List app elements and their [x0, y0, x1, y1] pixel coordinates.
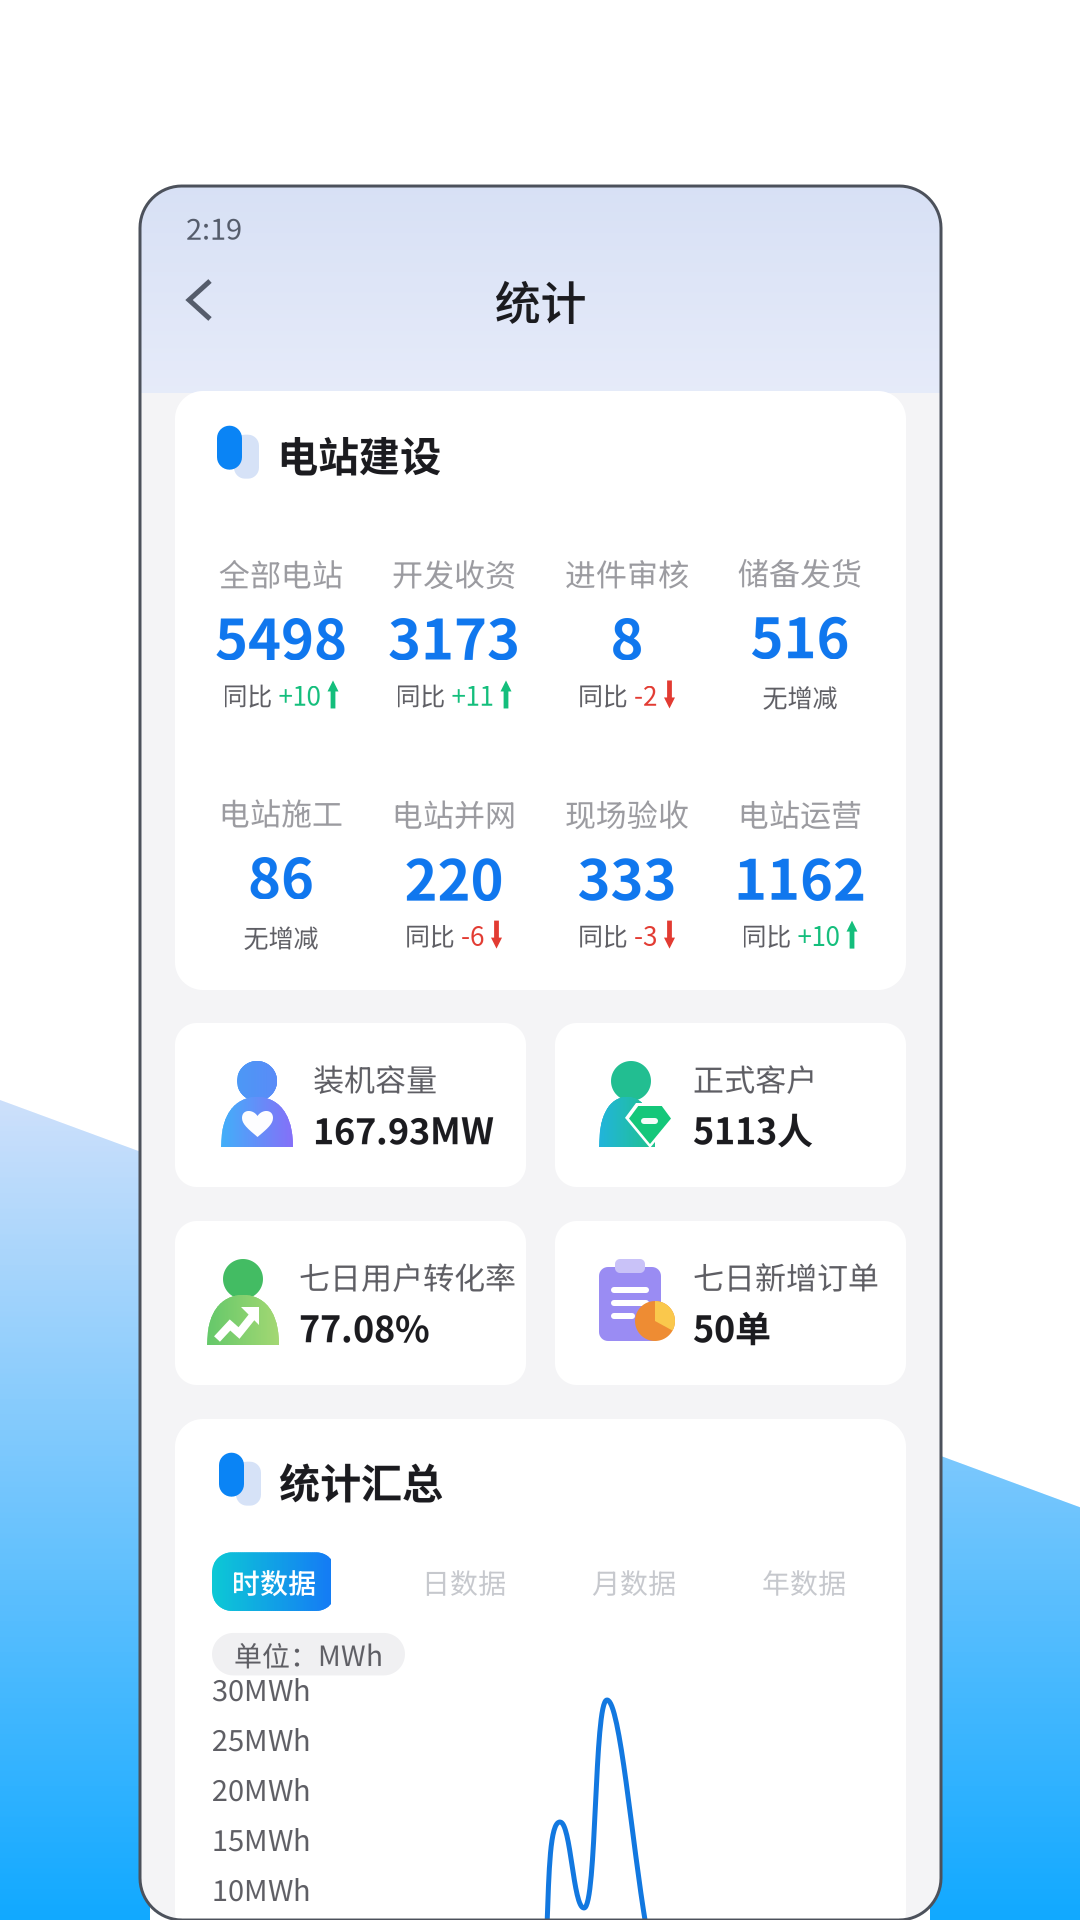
- staticText: +10: [797, 916, 839, 953]
- staticText: 时数据: [232, 1561, 316, 1602]
- button[interactable]: 正式客户: [555, 1023, 906, 1187]
- staticText: 电站并网: [392, 791, 516, 836]
- staticText: 1162: [734, 835, 866, 916]
- staticText: 30MWh: [212, 1667, 311, 1709]
- staticText: 5113人: [693, 1102, 813, 1154]
- button[interactable]: 七日新增订单: [555, 1221, 906, 1385]
- staticText: 统计汇总: [279, 1451, 443, 1510]
- staticText: 七日用户转化率: [299, 1253, 516, 1298]
- staticText: 电站运营: [738, 791, 862, 836]
- staticText: 220: [404, 835, 503, 916]
- staticText: 333: [577, 835, 676, 916]
- staticText: 无增减: [762, 678, 837, 714]
- staticText: 储备发货: [738, 549, 862, 594]
- staticText: +11: [451, 676, 493, 713]
- staticText: 正式客户: [693, 1055, 817, 1100]
- staticText: 单位：MWh: [234, 1634, 383, 1674]
- staticText: 50单: [693, 1300, 771, 1352]
- staticText: 86: [248, 833, 314, 914]
- button[interactable]: 日数据: [422, 1561, 506, 1602]
- button[interactable]: 年数据: [762, 1561, 846, 1602]
- staticText: 同比: [741, 916, 791, 953]
- staticText: -6: [461, 916, 484, 953]
- staticText: 167.93MW: [313, 1102, 494, 1154]
- button[interactable]: 装机容量: [175, 1023, 526, 1187]
- staticText: 现场验收: [565, 791, 689, 836]
- staticText: 同比: [395, 676, 445, 712]
- staticText: 七日新增订单: [693, 1253, 879, 1298]
- staticText: 8: [610, 594, 643, 676]
- staticText: 516: [750, 593, 849, 674]
- staticText: 20MWh: [212, 1767, 311, 1809]
- staticText: 15MWh: [212, 1817, 311, 1859]
- staticText: 年数据: [762, 1561, 846, 1602]
- button[interactable]: 月数据: [592, 1561, 676, 1602]
- staticText: 同比: [222, 676, 272, 712]
- staticText: 5498: [215, 594, 347, 676]
- staticText: 同比: [578, 916, 628, 953]
- staticText: 电站建设: [277, 424, 441, 483]
- staticText: 装机容量: [313, 1055, 437, 1100]
- button[interactable]: 时数据: [212, 1552, 336, 1611]
- staticText: -3: [634, 916, 657, 953]
- staticText: 电站施工: [219, 789, 343, 834]
- staticText: 进件审核: [565, 551, 689, 595]
- staticText: 同比: [405, 916, 455, 953]
- button[interactable]: 七日用户转化率: [175, 1221, 526, 1385]
- staticText: 3173: [388, 594, 520, 676]
- staticText: 统计: [494, 267, 586, 333]
- staticText: 月数据: [592, 1561, 676, 1602]
- staticText: 2:19: [186, 206, 242, 248]
- staticText: +10: [278, 676, 320, 713]
- staticText: 25MWh: [212, 1717, 311, 1759]
- staticText: 无增减: [243, 918, 318, 955]
- staticText: -2: [634, 676, 657, 713]
- staticText: 10MWh: [212, 1867, 311, 1909]
- staticText: 全部电站: [219, 551, 343, 595]
- staticText: 开发收资: [392, 551, 516, 595]
- staticText: 77.08%: [299, 1300, 430, 1352]
- button[interactable]: Back: [140, 259, 233, 341]
- staticText: 同比: [578, 676, 628, 712]
- staticText: 日数据: [422, 1561, 506, 1602]
